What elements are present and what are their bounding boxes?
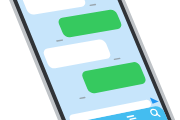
button[interactable]: Chat app phone mockup	[0, 0, 180, 120]
